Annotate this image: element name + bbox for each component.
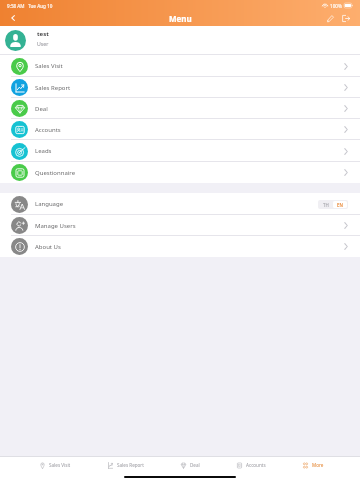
- button[interactable]: Accounts: [237, 457, 266, 473]
- button[interactable]: Edit: [322, 10, 338, 26]
- staticText: test: [37, 30, 49, 38]
- button[interactable]: Deal: [181, 457, 200, 473]
- staticText: Sales Visit: [49, 462, 71, 468]
- button[interactable]: Deal: [0, 98, 360, 119]
- button[interactable]: Sales Visit: [0, 55, 360, 77]
- button[interactable]: Leads: [0, 140, 360, 162]
- staticText: More: [312, 462, 324, 468]
- button[interactable]: Manage Users: [0, 215, 360, 236]
- staticText: EN: [337, 202, 343, 208]
- button[interactable]: Sales Report: [108, 457, 144, 473]
- staticText: Sales Visit: [35, 62, 63, 70]
- staticText: Accounts: [246, 462, 266, 468]
- staticText: Deal: [190, 462, 200, 468]
- staticText: User: [37, 40, 49, 47]
- staticText: Accounts: [35, 126, 61, 134]
- button[interactable]: More: [303, 457, 324, 473]
- button[interactable]: Sales Report: [0, 77, 360, 98]
- staticText: Manage Users: [35, 222, 76, 230]
- button[interactable]: test: [0, 26, 360, 55]
- button[interactable]: Sales Visit: [40, 457, 71, 473]
- button[interactable]: Logout: [338, 10, 354, 26]
- staticText: Sales Report: [35, 84, 71, 92]
- staticText: TH: [323, 202, 329, 208]
- staticText: Leads: [35, 147, 52, 155]
- button[interactable]: Accounts: [0, 119, 360, 140]
- staticText: Sales Report: [117, 462, 144, 468]
- button[interactable]: TH: [319, 201, 333, 208]
- staticText: About Us: [35, 243, 61, 251]
- staticText: Menu: [169, 13, 192, 24]
- button[interactable]: Questionnaire: [0, 162, 360, 183]
- staticText: 9:58 AM Tue Aug 10: [7, 3, 53, 9]
- button[interactable]: About Us: [0, 236, 360, 257]
- button[interactable]: EN: [333, 201, 347, 208]
- button[interactable]: Back: [4, 9, 22, 27]
- staticText: 100%: [330, 3, 342, 9]
- staticText: Questionnaire: [35, 169, 76, 177]
- staticText: Language: [35, 200, 64, 208]
- button[interactable]: Language: [0, 193, 360, 215]
- staticText: Deal: [35, 105, 48, 113]
